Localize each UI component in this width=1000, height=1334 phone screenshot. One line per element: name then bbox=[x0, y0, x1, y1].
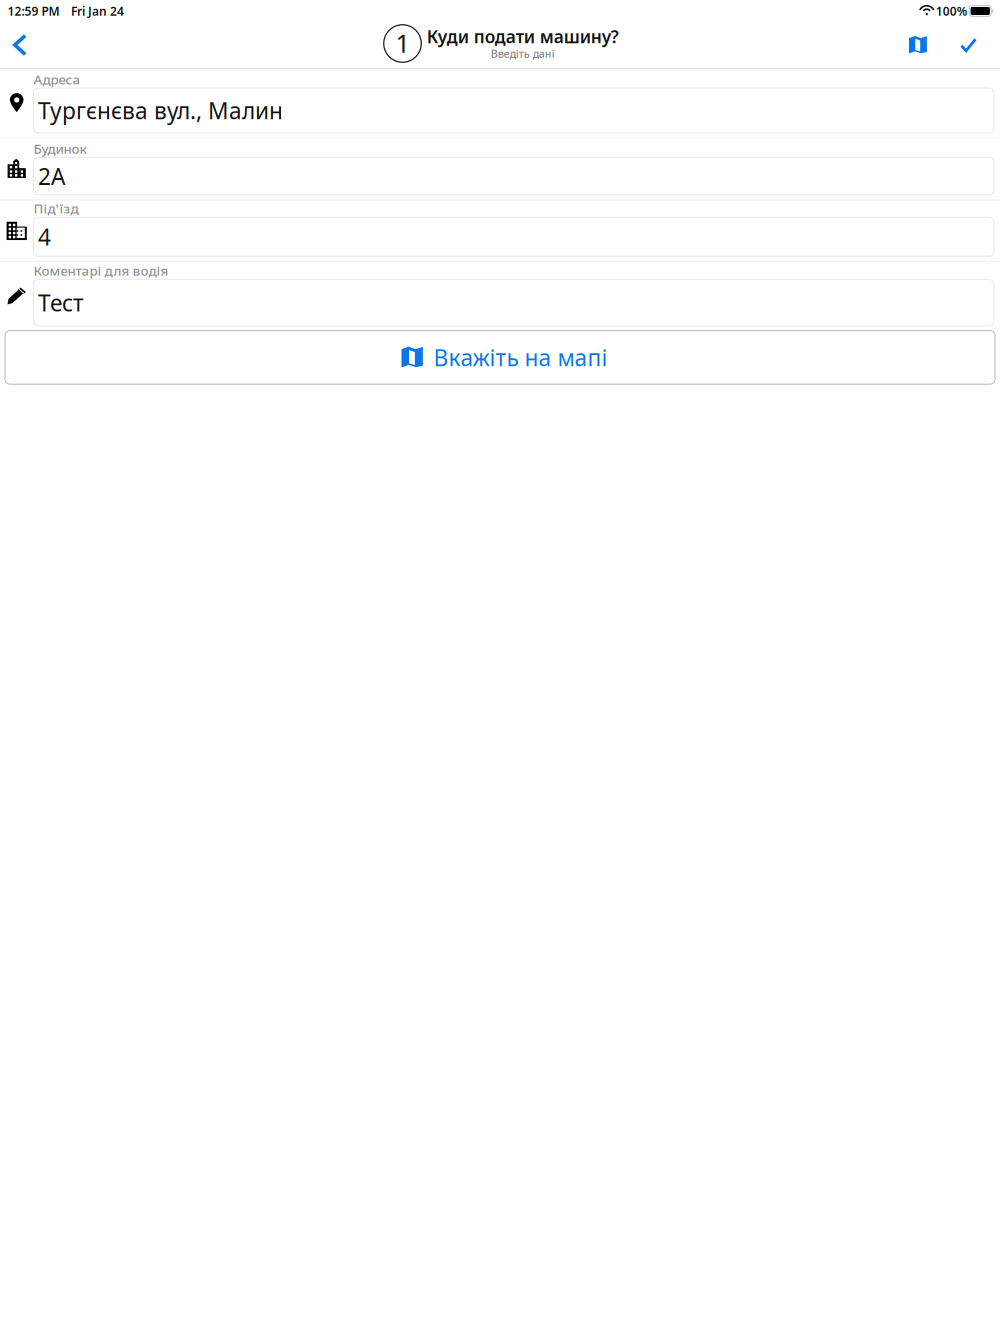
staticText: 4 bbox=[38, 222, 51, 252]
staticText: Адреса bbox=[33, 70, 80, 88]
staticText: Куди подати машину? bbox=[427, 25, 619, 48]
staticText: 1 bbox=[395, 26, 409, 60]
button[interactable]: Back bbox=[0, 22, 40, 68]
staticText: Тургєнєва вул., Малин bbox=[38, 95, 283, 126]
staticText: Тест bbox=[38, 287, 84, 318]
staticText: 12:59 PM bbox=[7, 3, 59, 19]
staticText: Коментарі для водія bbox=[33, 262, 168, 279]
button[interactable]: Вкажіть на мапі bbox=[0, 326, 1000, 384]
staticText: Вкажіть на мапі bbox=[433, 342, 607, 372]
staticText: Fri Jan 24 bbox=[71, 3, 124, 19]
button[interactable]: Done bbox=[945, 22, 992, 68]
staticText: Будинок bbox=[33, 140, 86, 157]
staticText: Введіть дані bbox=[491, 46, 555, 61]
staticText: 2А bbox=[38, 161, 65, 191]
staticText: 100% bbox=[936, 3, 968, 19]
staticText: Під'їзд bbox=[33, 199, 78, 217]
button[interactable]: Show map bbox=[891, 22, 945, 68]
